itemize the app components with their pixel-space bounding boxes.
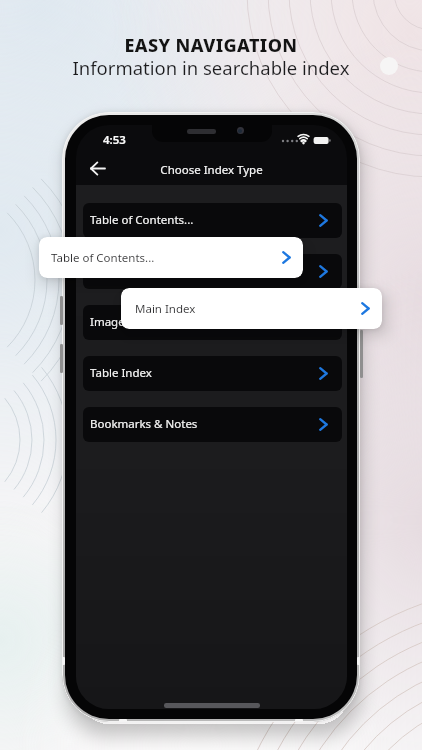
button[interactable] — [90, 161, 106, 176]
staticText: 4:53 — [103, 132, 126, 148]
button[interactable]: Table of Contents... — [83, 203, 342, 238]
staticText: Information in searchable index — [0, 55, 422, 80]
button[interactable]: Table of Contents... — [39, 237, 303, 278]
button[interactable]: Main Index — [121, 288, 382, 329]
staticText: Main Index — [135, 301, 196, 317]
staticText: EASY NAVIGATION — [0, 33, 422, 58]
staticText: Table of Contents... — [51, 250, 155, 266]
button[interactable]: Bookmarks & Notes — [83, 407, 342, 442]
staticText: Choose Index Type — [76, 162, 347, 178]
button[interactable]: Image Index — [83, 305, 342, 340]
button[interactable]: Table Index — [83, 356, 342, 391]
staticText: Table of Contents... — [90, 212, 194, 228]
staticText: Bookmarks & Notes — [90, 416, 198, 432]
staticText: Image Index — [90, 314, 159, 330]
staticText: Table Index — [90, 365, 152, 381]
button[interactable] — [83, 254, 342, 289]
